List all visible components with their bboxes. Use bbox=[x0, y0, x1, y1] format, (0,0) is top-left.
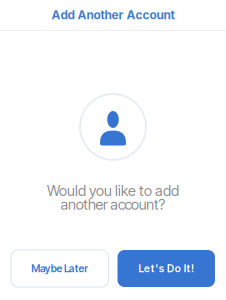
staticText: Would you like to add bbox=[47, 182, 179, 200]
button[interactable]: Maybe Later bbox=[11, 250, 108, 287]
staticText: Let's Do It! bbox=[138, 262, 194, 275]
staticText: Add Another Account bbox=[51, 8, 174, 22]
staticText: Maybe Later bbox=[31, 262, 88, 275]
staticText: another account? bbox=[60, 196, 165, 213]
button[interactable]: Let's Do It! bbox=[117, 250, 215, 287]
